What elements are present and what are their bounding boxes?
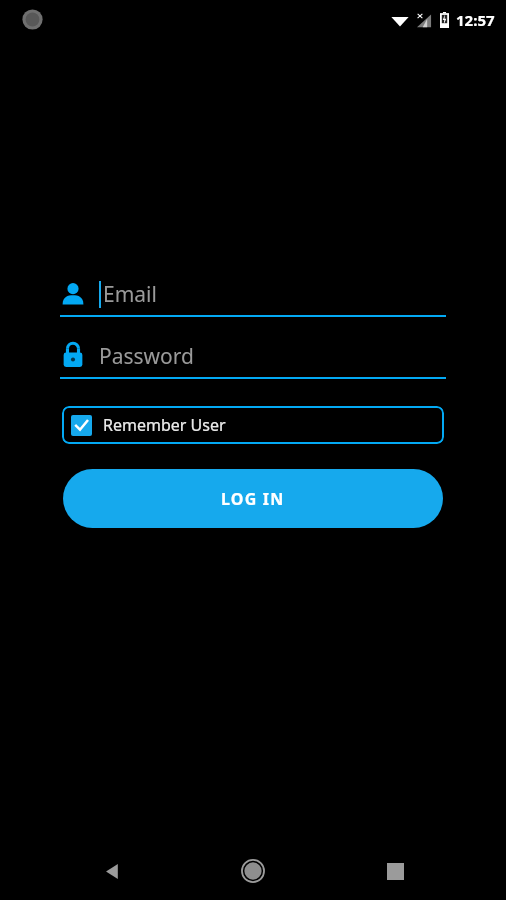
staticText: Remember User [103,414,226,436]
button[interactable]: LOG IN [63,469,443,528]
staticText: Password [99,342,194,371]
button[interactable]: Home [223,842,283,900]
button[interactable]: Remember User [62,406,444,444]
staticText: 12:57 [456,10,495,30]
button[interactable]: Email [60,275,446,317]
button[interactable]: Back [82,842,142,900]
staticText: LOG IN [221,488,285,510]
staticText: Email [103,280,157,309]
button[interactable]: Recent apps [365,842,425,900]
button[interactable]: Password [60,337,446,379]
